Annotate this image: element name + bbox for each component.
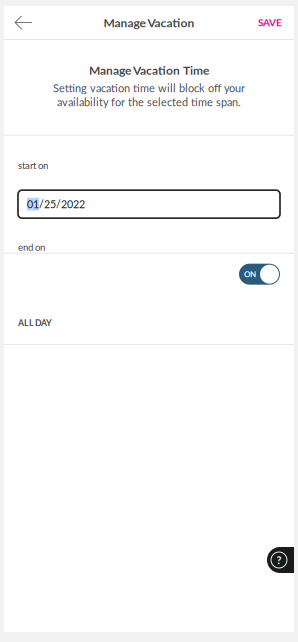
button[interactable]: 01 bbox=[18, 190, 280, 218]
staticText: Setting vacation time will block off you… bbox=[53, 81, 245, 94]
staticText: ? bbox=[276, 554, 281, 566]
staticText: SAVE bbox=[258, 16, 282, 28]
button[interactable]: SAVE bbox=[246, 6, 294, 39]
button[interactable]: Help bbox=[267, 547, 294, 573]
staticText: ALL DAY bbox=[18, 318, 52, 328]
staticText: /25/2022 bbox=[39, 198, 85, 211]
staticText: ON bbox=[244, 269, 256, 279]
button[interactable]: Back bbox=[4, 6, 44, 39]
button[interactable]: All day toggle, on bbox=[239, 264, 280, 285]
staticText: Manage Vacation Time bbox=[89, 63, 209, 77]
staticText: start on bbox=[18, 160, 48, 171]
staticText: 01 bbox=[27, 198, 39, 211]
staticText: availability for the selected time span. bbox=[57, 95, 241, 109]
staticText: end on bbox=[18, 241, 45, 253]
staticText: Manage Vacation bbox=[103, 15, 194, 30]
